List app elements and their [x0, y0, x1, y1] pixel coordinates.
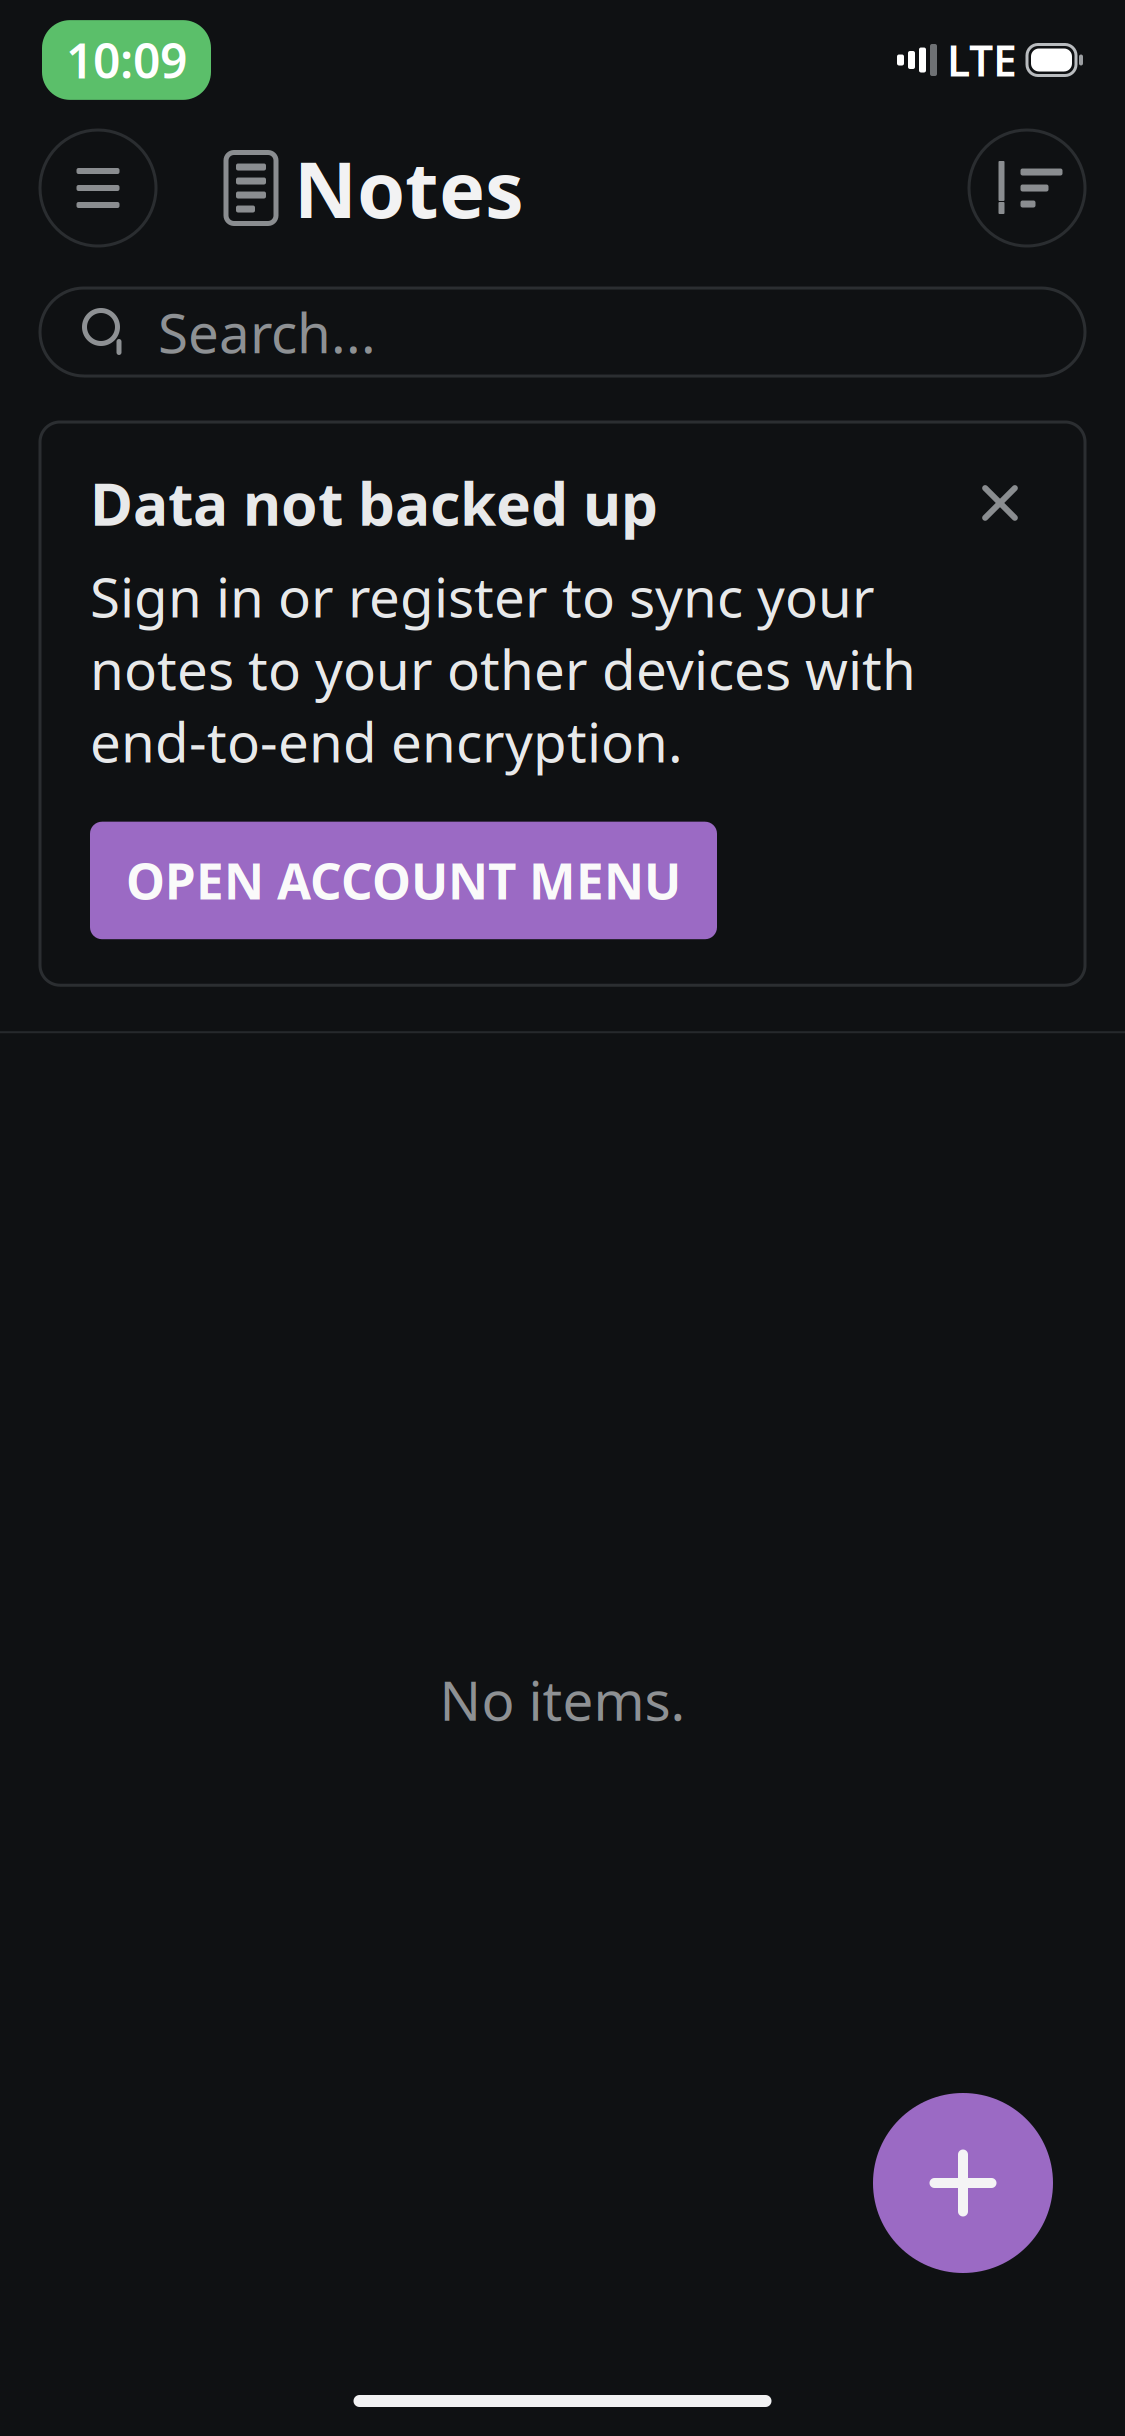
button[interactable]: Search... — [40, 288, 1085, 376]
staticText: 10:09 — [66, 28, 187, 92]
button[interactable]: Sort — [969, 130, 1085, 246]
button[interactable]: Dismiss — [965, 468, 1035, 538]
button[interactable]: Menu — [40, 130, 156, 246]
staticText: Notes — [294, 137, 524, 239]
staticText: Sign in or register to sync your notes t… — [90, 560, 916, 778]
button[interactable]: OPEN ACCOUNT MENU — [90, 822, 717, 939]
staticText: Search... — [158, 296, 376, 368]
staticText: Data not backed up — [90, 464, 658, 542]
staticText: No items. — [439, 1663, 685, 1736]
staticText: LTE — [947, 32, 1017, 88]
button[interactable]: New note — [873, 2093, 1053, 2273]
staticText: OPEN ACCOUNT MENU — [126, 848, 681, 913]
